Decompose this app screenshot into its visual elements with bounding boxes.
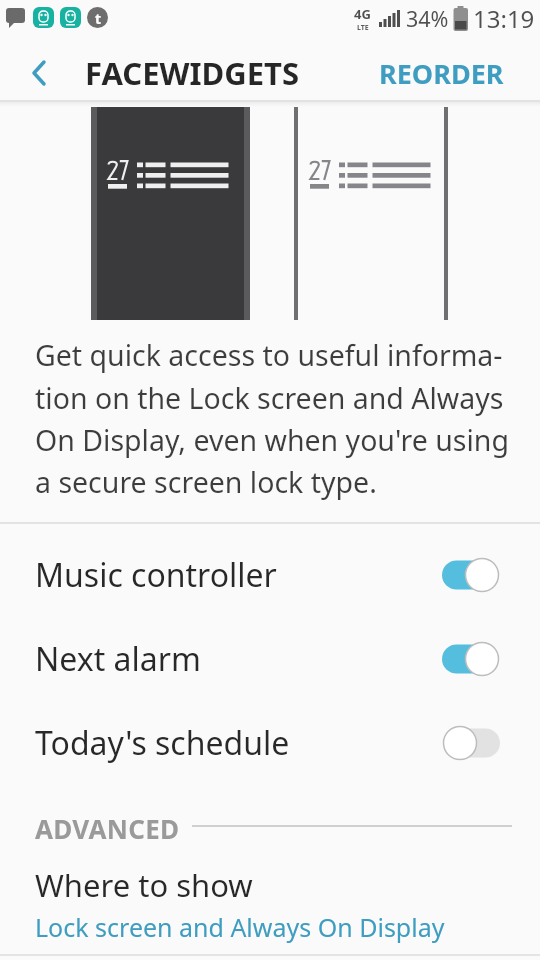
button[interactable] bbox=[18, 51, 62, 95]
staticText: Where to show bbox=[35, 864, 253, 906]
button[interactable]: Next alarm bbox=[0, 617, 540, 701]
staticText: 34% bbox=[406, 4, 449, 33]
button[interactable]: Where to show bbox=[0, 864, 540, 944]
staticText: Get quick access to useful informa- tion… bbox=[35, 336, 509, 501]
button[interactable]: Music controller bbox=[0, 533, 540, 617]
staticText: t bbox=[95, 9, 102, 28]
staticText: Today's schedule bbox=[35, 721, 290, 765]
staticText: ADVANCED bbox=[35, 811, 180, 841]
staticText: 4G bbox=[354, 5, 371, 23]
staticText: Next alarm bbox=[35, 637, 201, 681]
staticText: Lock screen and Always On Display bbox=[35, 910, 445, 944]
staticText: REORDER bbox=[379, 55, 504, 92]
button[interactable]: REORDER bbox=[379, 55, 540, 92]
button[interactable] bbox=[294, 107, 448, 320]
button[interactable]: Today's schedule bbox=[0, 701, 540, 785]
staticText: 13:19 bbox=[473, 2, 535, 35]
staticText: Music controller bbox=[35, 553, 277, 597]
button[interactable] bbox=[91, 107, 250, 320]
staticText: FACEWIDGETS bbox=[85, 52, 299, 94]
staticText: LTE bbox=[357, 23, 369, 33]
